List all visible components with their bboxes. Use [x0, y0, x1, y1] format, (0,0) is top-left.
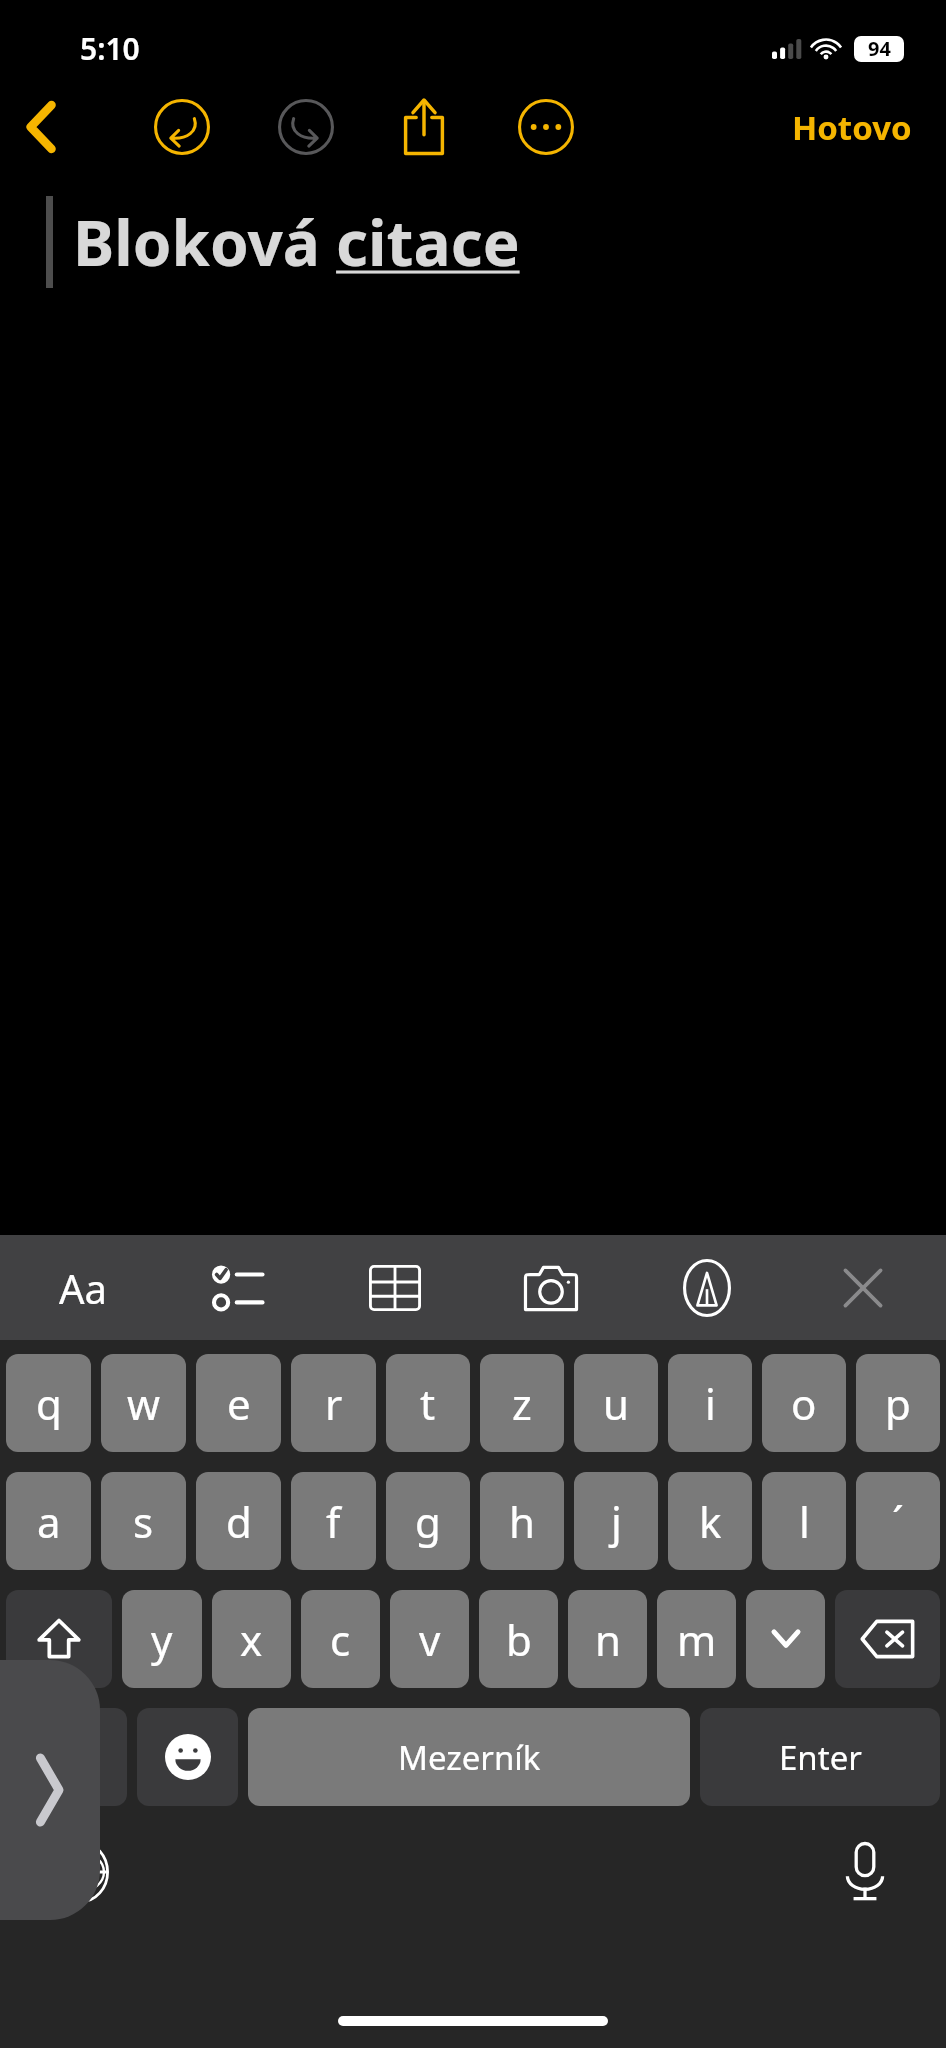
- staticText: j: [611, 1493, 622, 1550]
- staticText: Mezerník: [398, 1735, 541, 1780]
- staticText: c: [330, 1611, 351, 1668]
- staticText: 5:10: [80, 28, 140, 69]
- button[interactable]: Emoji: [137, 1708, 238, 1806]
- button[interactable]: x: [212, 1590, 291, 1688]
- button[interactable]: Backspace: [835, 1590, 940, 1688]
- button[interactable]: h: [480, 1472, 564, 1570]
- button[interactable]: d: [196, 1472, 281, 1570]
- staticText: 123: [39, 1735, 94, 1779]
- staticText: g: [415, 1493, 441, 1550]
- button[interactable]: w: [101, 1354, 186, 1452]
- button[interactable]: ´: [856, 1472, 940, 1570]
- button[interactable]: i: [668, 1354, 752, 1452]
- button[interactable]: t: [386, 1354, 470, 1452]
- staticText: e: [227, 1375, 251, 1432]
- button[interactable]: o: [762, 1354, 846, 1452]
- staticText: Enter: [779, 1735, 862, 1780]
- staticText: t: [420, 1375, 436, 1432]
- button[interactable]: j: [574, 1472, 658, 1570]
- staticText: n: [595, 1611, 621, 1668]
- button[interactable]: f: [291, 1472, 376, 1570]
- button[interactable]: More: [512, 93, 580, 161]
- button[interactable]: Change keyboard: [44, 1835, 118, 1909]
- button[interactable]: k: [668, 1472, 752, 1570]
- button[interactable]: Open drawer: [0, 1660, 100, 1920]
- button[interactable]: q: [6, 1354, 91, 1452]
- staticText: q: [36, 1375, 62, 1432]
- staticText: v: [419, 1611, 441, 1668]
- button[interactable]: Share: [388, 91, 460, 163]
- button[interactable]: Checklist: [196, 1245, 282, 1331]
- staticText: l: [799, 1493, 810, 1550]
- other: Emoji: [165, 1734, 211, 1780]
- button[interactable]: b: [479, 1590, 558, 1688]
- staticText: m: [677, 1611, 717, 1668]
- button[interactable]: u: [574, 1354, 658, 1452]
- staticText: Bloková citace: [73, 200, 520, 284]
- staticText: i: [705, 1375, 716, 1432]
- staticText: d: [226, 1493, 252, 1550]
- button[interactable]: 123: [6, 1708, 127, 1806]
- button[interactable]: Text format: [40, 1245, 126, 1331]
- staticText: ´: [892, 1493, 904, 1550]
- staticText: Hotovo: [792, 105, 912, 150]
- button[interactable]: Markup: [664, 1245, 750, 1331]
- button[interactable]: g: [386, 1472, 470, 1570]
- staticText: Aa: [59, 1261, 107, 1315]
- button[interactable]: Hotovo: [784, 99, 920, 156]
- other: Backspace: [860, 1619, 916, 1659]
- staticText: y: [151, 1611, 173, 1668]
- staticText: w: [127, 1375, 161, 1432]
- staticText: u: [603, 1375, 629, 1432]
- button[interactable]: c: [301, 1590, 380, 1688]
- staticText: a: [37, 1493, 61, 1550]
- button[interactable]: n: [568, 1590, 647, 1688]
- button[interactable]: v: [390, 1590, 469, 1688]
- staticText: h: [509, 1493, 535, 1550]
- staticText: p: [885, 1375, 911, 1432]
- button[interactable]: Redo: [272, 93, 340, 161]
- other: Shift: [37, 1617, 81, 1661]
- staticText: 94: [868, 35, 891, 62]
- button[interactable]: r: [291, 1354, 376, 1452]
- staticText: o: [791, 1375, 817, 1432]
- button[interactable]: m: [657, 1590, 736, 1688]
- button[interactable]: s: [101, 1472, 186, 1570]
- button[interactable]: l: [762, 1472, 846, 1570]
- button[interactable]: Back: [10, 95, 74, 159]
- staticText: x: [240, 1611, 263, 1668]
- button[interactable]: Shift: [6, 1590, 112, 1688]
- button[interactable]: Enter: [700, 1708, 940, 1806]
- button[interactable]: a: [6, 1472, 91, 1570]
- button[interactable]: Camera: [508, 1245, 594, 1331]
- button[interactable]: y: [122, 1590, 202, 1688]
- button[interactable]: Undo: [148, 93, 216, 161]
- button[interactable]: Close: [820, 1245, 906, 1331]
- staticText: s: [133, 1493, 154, 1550]
- button[interactable]: e: [196, 1354, 281, 1452]
- staticText: f: [326, 1493, 341, 1550]
- staticText: b: [506, 1611, 532, 1668]
- button[interactable]: p: [856, 1354, 940, 1452]
- button[interactable]: Table: [352, 1245, 438, 1331]
- staticText: k: [699, 1493, 722, 1550]
- button[interactable]: Dictate: [828, 1835, 902, 1909]
- button[interactable]: Mezerník: [248, 1708, 690, 1806]
- button[interactable]: [746, 1590, 825, 1688]
- staticText: r: [325, 1375, 343, 1432]
- button[interactable]: z: [480, 1354, 564, 1452]
- staticText: z: [512, 1375, 532, 1432]
